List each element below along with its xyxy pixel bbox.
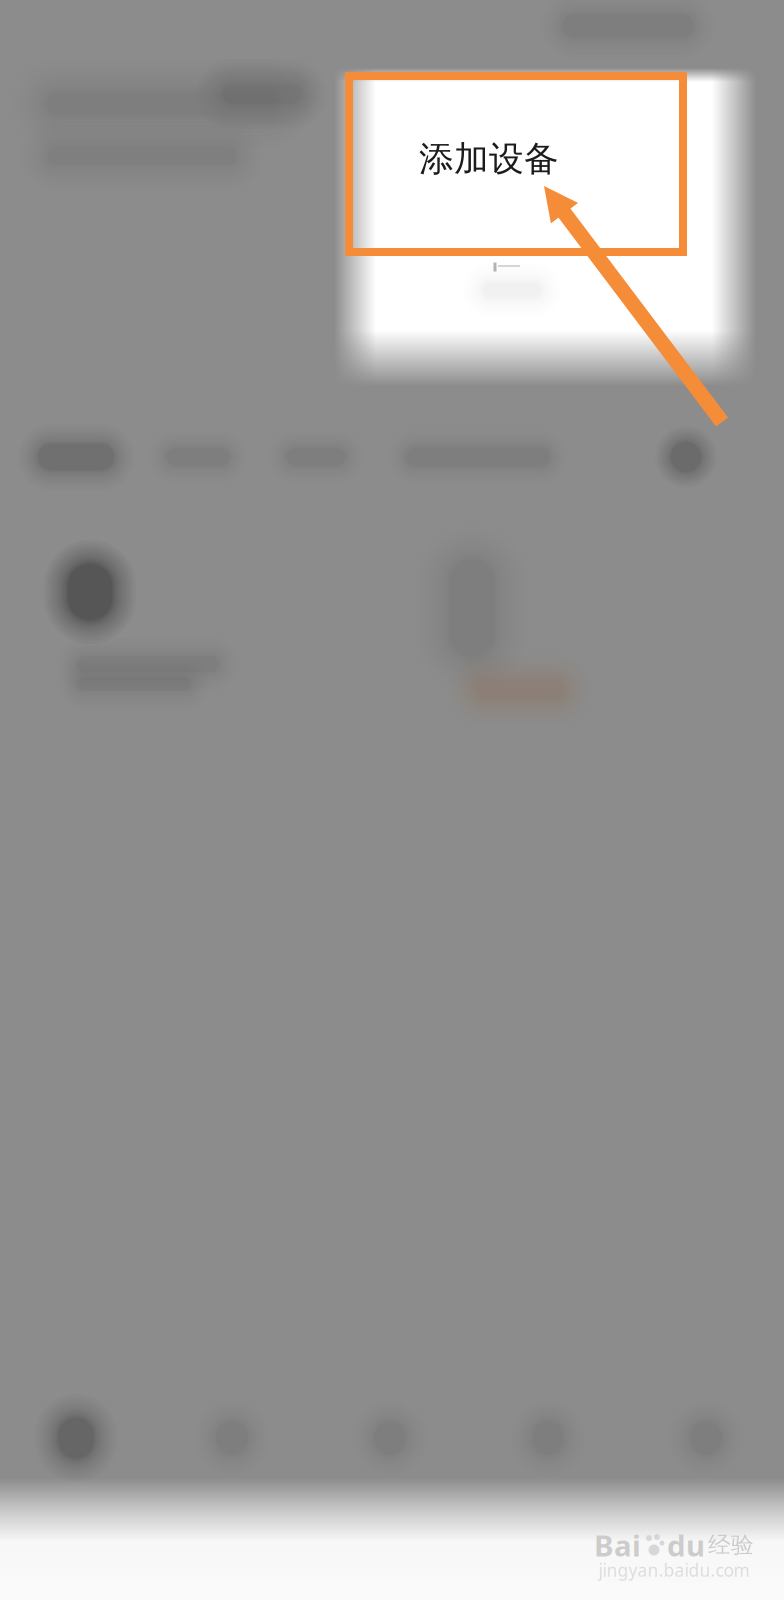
staticText: 经验 <box>708 1531 754 1559</box>
staticText: du <box>667 1525 705 1564</box>
staticText: jingyan.baidu.com <box>598 1558 749 1581</box>
button[interactable]: 添加设备 <box>322 72 655 246</box>
staticText: Bai <box>594 1525 641 1564</box>
staticText: 添加设备 <box>419 138 559 180</box>
